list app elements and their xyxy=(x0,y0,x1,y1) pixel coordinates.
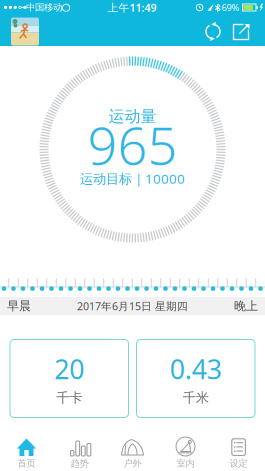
button[interactable]: 户外 xyxy=(106,430,159,471)
button[interactable]: 室内 xyxy=(159,430,212,471)
button[interactable]: Refresh xyxy=(201,19,225,43)
button[interactable]: 20 xyxy=(10,339,128,417)
staticText: 晚上 xyxy=(234,299,258,313)
staticText: 运动量 xyxy=(108,107,156,126)
staticText: 早晨 xyxy=(7,299,31,313)
staticText: 69% xyxy=(221,1,239,14)
staticText: 2017年6月15日 星期四 xyxy=(77,299,188,313)
staticText: 设定 xyxy=(229,458,247,469)
staticText: 趋势 xyxy=(70,458,88,469)
button[interactable]: 设定 xyxy=(212,430,265,471)
button[interactable]: 首页 xyxy=(0,430,53,471)
button[interactable]: 趋势 xyxy=(53,430,106,471)
staticText: 户外 xyxy=(123,458,141,469)
staticText: 20 xyxy=(54,351,84,386)
staticText: 0.43 xyxy=(170,351,222,386)
button[interactable]: Share xyxy=(229,19,253,43)
button[interactable]: Profile xyxy=(11,17,39,45)
staticText: 上午11:49 xyxy=(107,0,156,15)
staticText: 中国移动 xyxy=(26,2,62,13)
staticText: 运动目标 | 10000 xyxy=(80,170,185,187)
button[interactable]: 0.43 xyxy=(136,339,255,417)
staticText: 千卡 xyxy=(56,389,82,406)
staticText: 千米 xyxy=(183,389,209,406)
staticText: 965 xyxy=(87,110,177,179)
staticText: 室内 xyxy=(176,458,194,469)
staticText: 首页 xyxy=(17,458,35,469)
